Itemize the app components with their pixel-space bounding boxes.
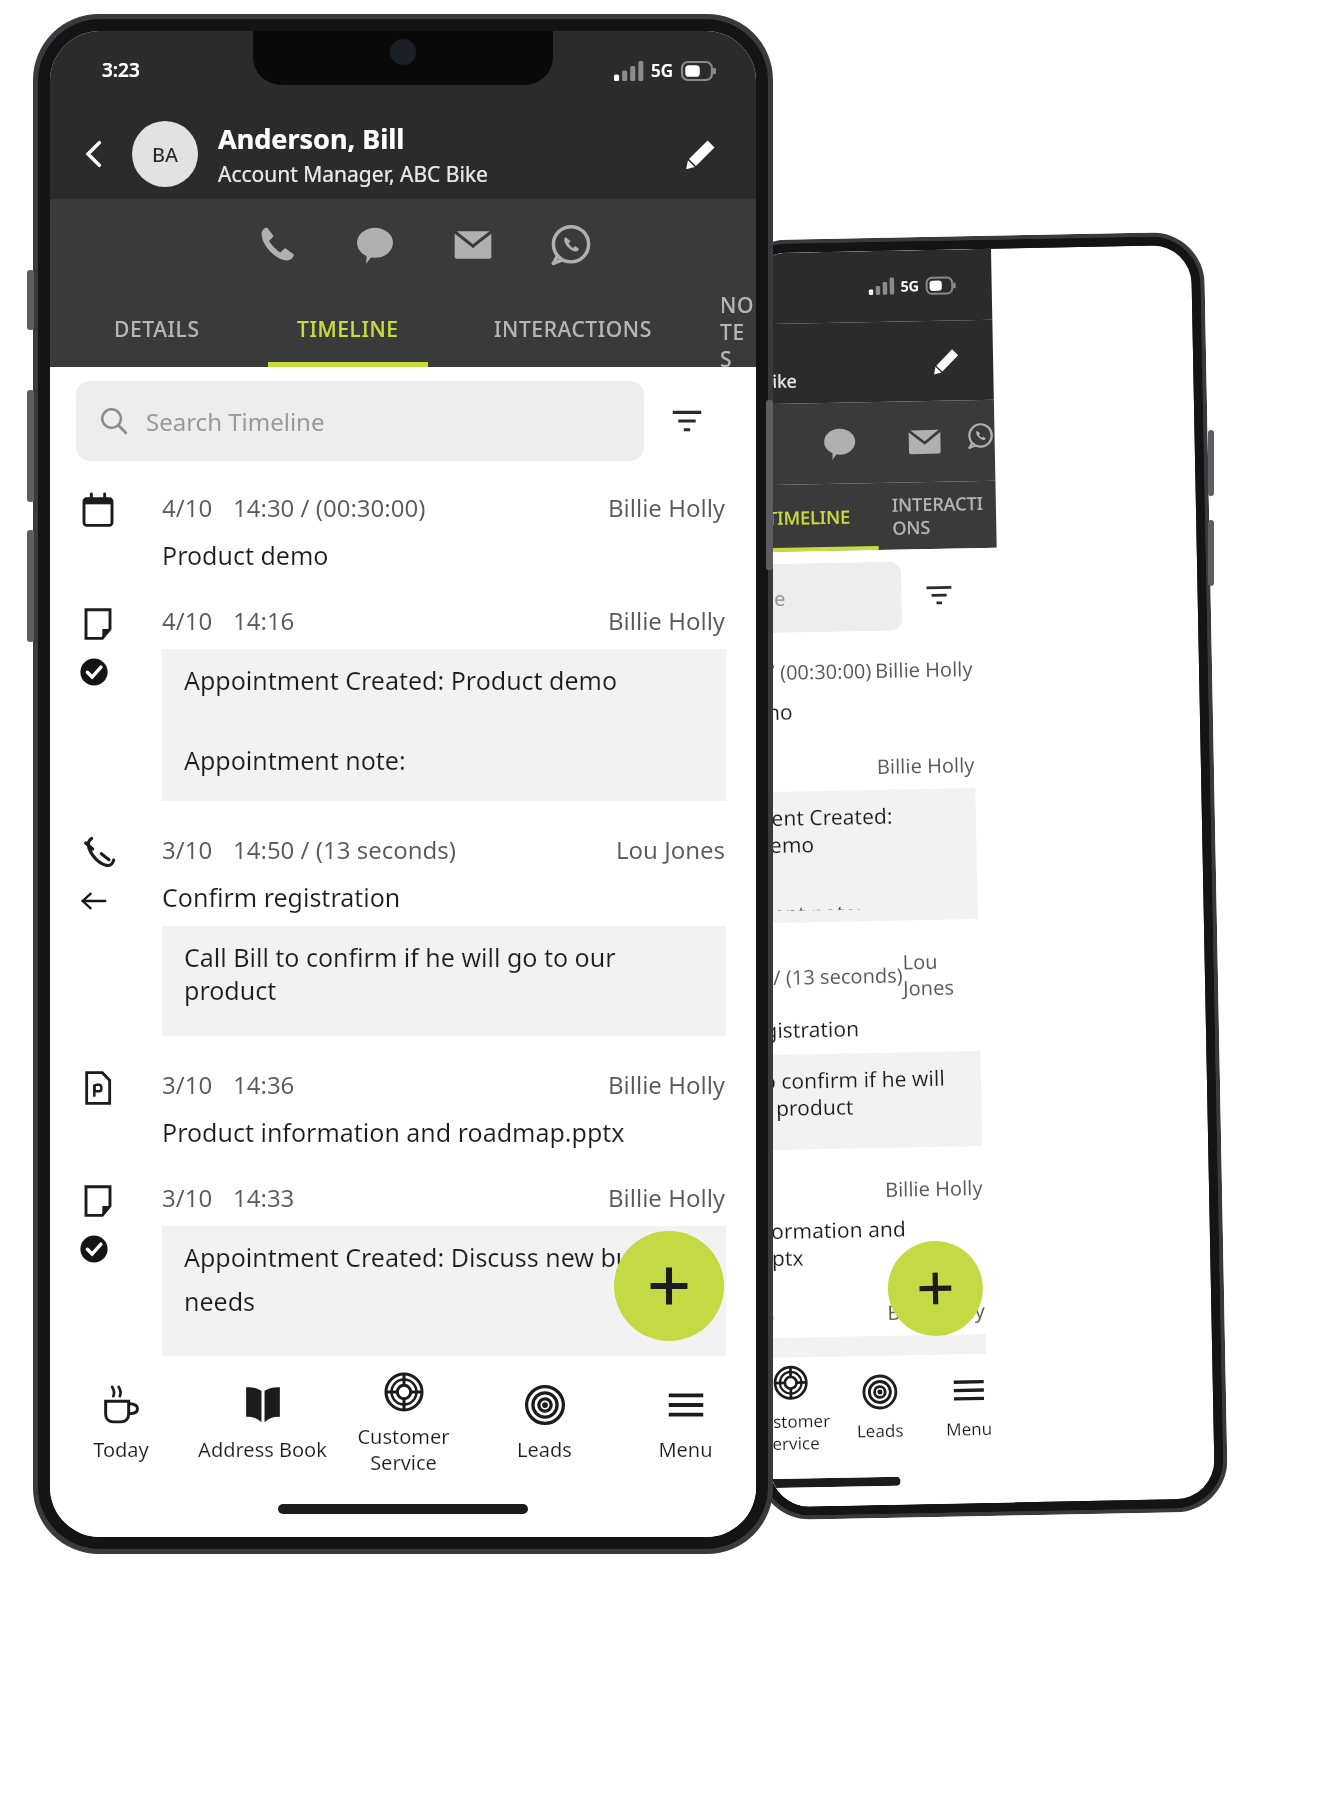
staticText: Billie Holly	[608, 1181, 726, 1214]
staticText: BA	[152, 141, 179, 168]
staticText: needs	[184, 1284, 256, 1318]
staticText: 4/10	[162, 491, 213, 524]
staticText: 5G	[651, 59, 674, 82]
staticText: 4/10	[162, 604, 213, 637]
staticText: Lou Jones	[902, 947, 979, 1001]
staticText: Billie Holly	[608, 1068, 726, 1101]
staticText: Product demo	[755, 698, 793, 727]
staticText: Leads	[856, 1419, 904, 1442]
staticText: Confirm registration	[762, 1014, 860, 1045]
staticText: TIMELINE	[297, 315, 399, 344]
staticText: Account Manager, ABC Bike	[218, 160, 488, 189]
button[interactable]: Edit	[921, 335, 972, 386]
button[interactable]: 3/10	[760, 928, 1008, 1159]
staticText: Today	[93, 1436, 149, 1463]
staticText: Appointment Created: Discuss new busines…	[184, 1240, 704, 1274]
button[interactable]: Email	[424, 199, 522, 291]
staticText: 14:33	[767, 1301, 776, 1328]
button[interactable]: Search Timeline	[753, 561, 902, 633]
staticText: Billie Holly	[608, 491, 726, 524]
button[interactable]: TIMELINE	[751, 483, 893, 552]
staticText: Confirm registration	[162, 880, 401, 914]
staticText: Leads	[517, 1436, 572, 1463]
staticText: information session.	[764, 1130, 882, 1138]
button[interactable]: Search Timeline	[76, 381, 644, 461]
button[interactable]: DETAILS	[62, 291, 252, 367]
staticText: TIMELINE	[767, 504, 851, 531]
staticText: Address Book	[198, 1436, 327, 1463]
staticText: 5G	[900, 276, 920, 295]
staticText: Customer Service	[333, 1423, 474, 1476]
button[interactable]: Edit	[672, 125, 730, 183]
staticText: 14:33	[233, 1181, 295, 1214]
staticText: DETAILS	[114, 315, 200, 344]
staticText: Call Bill to confirm if he will go to ou…	[184, 940, 704, 1007]
staticText: 3:23	[102, 57, 140, 83]
staticText: INTERACTIONS	[494, 315, 652, 344]
button[interactable]: 3/10	[764, 1154, 1011, 1282]
button[interactable]: Email	[881, 400, 967, 483]
staticText: Product demo	[162, 538, 329, 572]
button[interactable]: WhatsApp	[966, 400, 995, 481]
button[interactable]: Add	[614, 1231, 724, 1341]
staticText: Billie Holly	[887, 1297, 986, 1326]
button[interactable]: 4/10	[50, 582, 756, 811]
button[interactable]: 3/10	[767, 1277, 1012, 1358]
staticText: Search Timeline	[146, 405, 325, 438]
staticText: Lou Jones	[616, 833, 726, 866]
staticText: Appointment Created: Product demo	[184, 663, 618, 697]
button[interactable]: 3/10	[50, 811, 756, 1046]
staticText: Appointment note:	[184, 743, 406, 777]
staticText: Billie Holly	[885, 1174, 983, 1203]
button[interactable]: Customer Service	[768, 1357, 836, 1460]
button[interactable]: BA	[132, 121, 198, 187]
button[interactable]: Leads	[474, 1363, 615, 1481]
button[interactable]: INTERACTIONS	[891, 481, 997, 550]
button[interactable]: Customer Service	[333, 1363, 474, 1481]
staticText: Billie Holly	[608, 604, 726, 637]
button[interactable]: TIMELINE	[252, 291, 444, 367]
staticText: Appointment note:	[759, 898, 863, 911]
staticText: 14:36	[233, 1068, 295, 1101]
button[interactable]: 4/10	[50, 469, 756, 582]
staticText: 14:16	[233, 604, 295, 637]
staticText: Appointment Created: Product demo	[758, 800, 958, 860]
button[interactable]: Menu	[923, 1353, 1014, 1457]
staticText: Customer Service	[769, 1409, 836, 1455]
button[interactable]: 3/10	[50, 1046, 756, 1159]
staticText: Call Bill to confirm if he will go to ou…	[763, 1063, 963, 1123]
button[interactable]: 4/10	[756, 732, 1004, 932]
staticText: Search Timeline	[753, 585, 786, 612]
button[interactable]: 4/10	[754, 636, 1000, 736]
button[interactable]: INTERACTIONS	[444, 291, 702, 367]
staticText: 14:50 / (13 seconds)	[233, 833, 457, 866]
staticText: 14:36	[765, 1178, 773, 1205]
staticText: 3/10	[162, 1068, 213, 1101]
button[interactable]: Menu	[615, 1363, 756, 1481]
button[interactable]: Filter	[644, 381, 730, 461]
staticText: Menu	[945, 1417, 993, 1441]
staticText: Account Manager, ABC Bike	[749, 368, 798, 394]
button[interactable]: Message	[326, 199, 424, 291]
button[interactable]: 3/10	[50, 1159, 756, 1363]
staticText: 3/10	[162, 833, 213, 866]
staticText: 14:50 / (13 seconds)	[761, 961, 903, 991]
button[interactable]: Call	[228, 199, 326, 291]
button[interactable]: NOTES	[702, 291, 756, 367]
staticText: Product information and roadmap.pptx	[162, 1115, 625, 1149]
button[interactable]: Address Book	[192, 1363, 333, 1481]
staticText: INTERACTIONS	[892, 491, 996, 541]
staticText: Product information and roadmap.pptx	[765, 1213, 984, 1273]
button[interactable]: Call	[750, 403, 797, 485]
staticText: 14:30 / (00:30:00)	[233, 491, 426, 524]
button[interactable]: Back	[68, 128, 120, 180]
button[interactable]: Leads	[834, 1355, 925, 1459]
button[interactable]: Message	[796, 402, 882, 484]
staticText: NOTES	[720, 291, 756, 367]
button[interactable]: Add	[887, 1240, 984, 1337]
button[interactable]: Filter	[901, 560, 976, 630]
button[interactable]: Today	[50, 1363, 192, 1481]
button[interactable]: WhatsApp	[522, 199, 620, 291]
